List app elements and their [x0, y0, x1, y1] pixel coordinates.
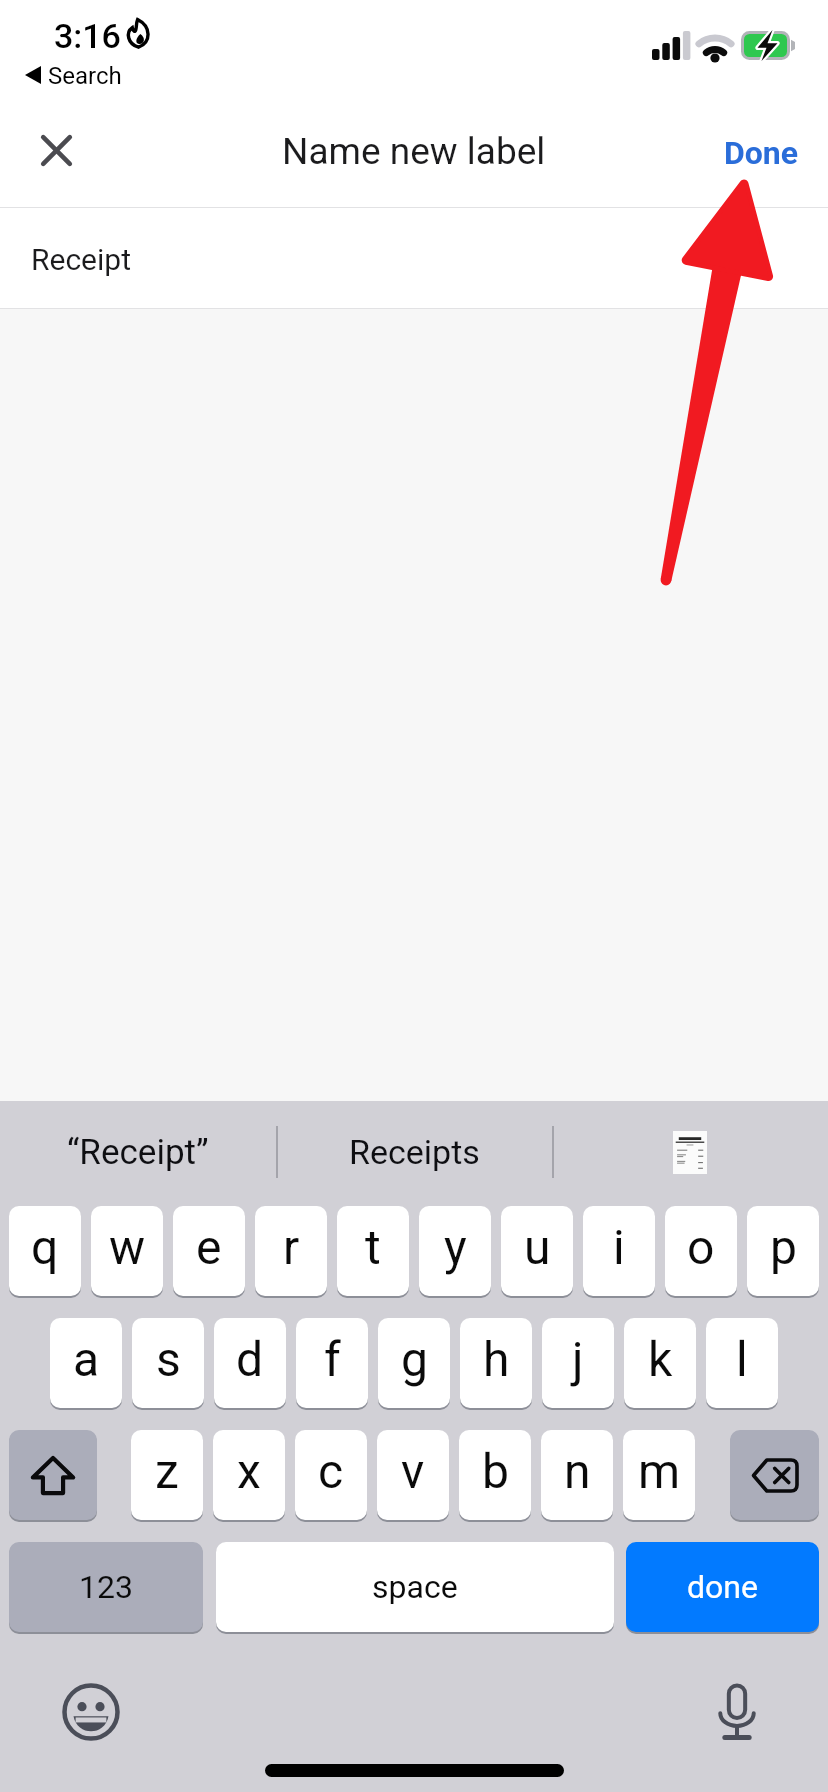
- staticText: s: [156, 1331, 181, 1387]
- staticText: y: [444, 1219, 467, 1275]
- button[interactable]: m: [623, 1430, 695, 1520]
- button[interactable]: x: [213, 1430, 285, 1520]
- staticText: g: [401, 1331, 428, 1387]
- staticText: f: [324, 1331, 341, 1387]
- staticText: Receipt: [31, 242, 131, 277]
- button[interactable]: s: [132, 1318, 204, 1408]
- staticText: k: [648, 1331, 673, 1387]
- staticText: “Receipt”: [67, 1132, 209, 1173]
- button[interactable]: f: [296, 1318, 368, 1408]
- staticText: h: [483, 1331, 510, 1387]
- button[interactable]: Emoji keyboard: [60, 1681, 122, 1743]
- button[interactable]: t: [337, 1206, 409, 1296]
- button[interactable]: Search: [18, 56, 134, 94]
- staticText: w: [109, 1219, 146, 1275]
- staticText: r: [283, 1219, 300, 1275]
- button[interactable]: y: [419, 1206, 491, 1296]
- staticText: l: [736, 1331, 748, 1387]
- button[interactable]: Receipt emoji: [552, 1101, 828, 1203]
- staticText: o: [687, 1219, 715, 1275]
- button[interactable]: p: [747, 1206, 819, 1296]
- button[interactable]: u: [501, 1206, 573, 1296]
- staticText: m: [638, 1443, 681, 1499]
- staticText: e: [196, 1219, 222, 1275]
- button[interactable]: Close: [25, 119, 87, 181]
- button[interactable]: q: [9, 1206, 81, 1296]
- staticText: x: [237, 1443, 261, 1499]
- button[interactable]: r: [255, 1206, 327, 1296]
- button[interactable]: v: [377, 1430, 449, 1520]
- staticText: q: [31, 1219, 59, 1275]
- staticText: 123: [79, 1568, 133, 1606]
- button[interactable]: Backspace: [730, 1430, 819, 1520]
- staticText: i: [613, 1219, 625, 1275]
- staticText: done: [687, 1568, 758, 1606]
- staticText: v: [401, 1443, 425, 1499]
- staticText: Search: [48, 62, 122, 90]
- button[interactable]: d: [214, 1318, 286, 1408]
- button[interactable]: Dictation: [706, 1681, 768, 1743]
- button[interactable]: Done: [711, 120, 811, 186]
- staticText: a: [73, 1331, 100, 1387]
- staticText: t: [365, 1219, 381, 1275]
- button[interactable]: n: [541, 1430, 613, 1520]
- button[interactable]: 123: [9, 1542, 203, 1632]
- button[interactable]: “Receipt”: [0, 1101, 276, 1203]
- staticText: Name new label: [282, 130, 546, 173]
- staticText: c: [318, 1443, 344, 1499]
- button[interactable]: i: [583, 1206, 655, 1296]
- button[interactable]: a: [50, 1318, 122, 1408]
- button[interactable]: c: [295, 1430, 367, 1520]
- staticText: u: [524, 1219, 551, 1275]
- button[interactable]: e: [173, 1206, 245, 1296]
- button[interactable]: z: [131, 1430, 203, 1520]
- button[interactable]: j: [542, 1318, 614, 1408]
- button[interactable]: h: [460, 1318, 532, 1408]
- staticText: 3:16: [54, 16, 121, 56]
- button[interactable]: w: [91, 1206, 163, 1296]
- button[interactable]: k: [624, 1318, 696, 1408]
- button[interactable]: space: [216, 1542, 614, 1632]
- staticText: j: [572, 1331, 584, 1387]
- button[interactable]: Shift: [9, 1430, 97, 1520]
- button[interactable]: Receipt: [0, 208, 828, 308]
- staticText: d: [236, 1331, 264, 1387]
- staticText: z: [155, 1443, 179, 1499]
- button[interactable]: l: [706, 1318, 778, 1408]
- staticText: Receipts: [349, 1132, 480, 1172]
- button[interactable]: g: [378, 1318, 450, 1408]
- button[interactable]: Receipts: [276, 1101, 552, 1203]
- staticText: b: [482, 1443, 509, 1499]
- button[interactable]: b: [459, 1430, 531, 1520]
- button[interactable]: o: [665, 1206, 737, 1296]
- staticText: p: [770, 1219, 797, 1275]
- button[interactable]: done: [626, 1542, 819, 1632]
- staticText: space: [372, 1568, 458, 1606]
- staticText: n: [564, 1443, 591, 1499]
- staticText: Done: [724, 134, 799, 172]
